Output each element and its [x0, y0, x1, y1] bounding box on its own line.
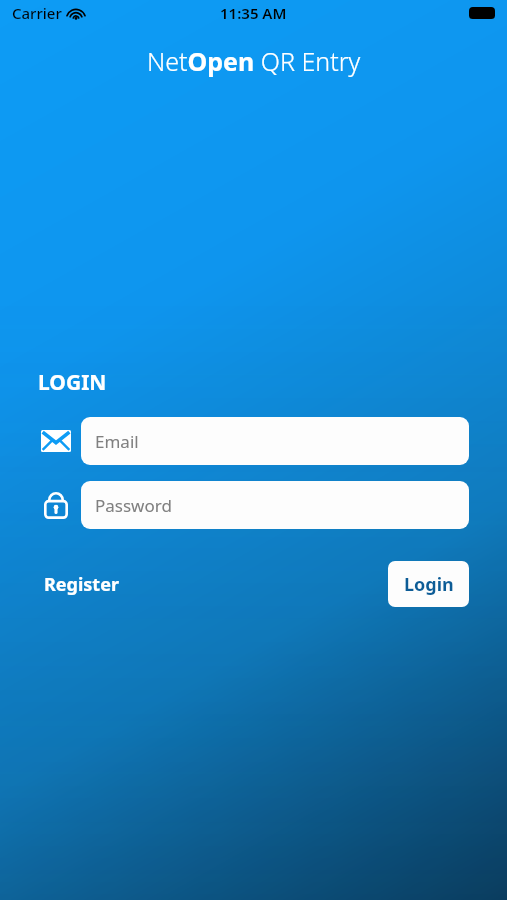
other: Email icon — [37, 417, 75, 465]
other: Password icon — [37, 481, 75, 529]
button[interactable]: Register — [38, 564, 125, 605]
staticText: Login — [404, 572, 454, 597]
staticText: 11:35 AM — [220, 3, 287, 23]
staticText: Password — [95, 494, 172, 517]
staticText: NetOpen QR Entry — [147, 44, 361, 78]
button[interactable]: Password — [81, 481, 469, 529]
staticText: Email — [95, 430, 139, 453]
staticText: LOGIN — [38, 368, 107, 397]
staticText: Register — [44, 572, 119, 597]
staticText: Carrier — [12, 3, 62, 23]
button[interactable]: Login — [388, 561, 469, 607]
button[interactable]: Email — [81, 417, 469, 465]
